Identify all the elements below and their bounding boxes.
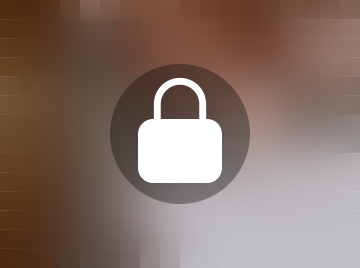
button[interactable]: Locked xyxy=(0,0,360,268)
